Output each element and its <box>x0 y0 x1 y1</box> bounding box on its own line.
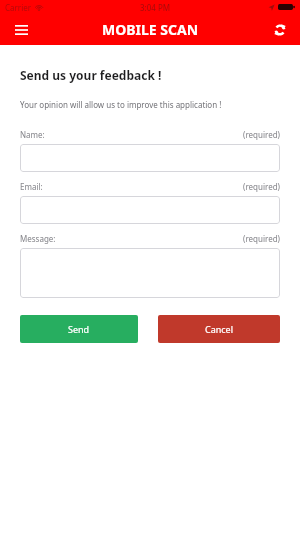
button[interactable]: Open navigation menu <box>0 14 42 45</box>
button[interactable]: Text input field <box>20 248 280 298</box>
button[interactable]: Text input field <box>20 144 280 172</box>
staticText: Name: <box>20 129 45 140</box>
staticText: Send <box>68 323 90 335</box>
button[interactable]: Cancel <box>158 315 280 343</box>
staticText: (required) <box>243 181 280 192</box>
button[interactable]: Refresh <box>260 14 300 45</box>
staticText: Cancel <box>205 323 234 335</box>
staticText: Send us your feedback ! <box>20 67 162 83</box>
staticText: Your opinion will allow us to improve th… <box>20 99 222 110</box>
staticText: Message: <box>20 233 56 244</box>
button[interactable]: Send <box>20 315 138 343</box>
staticText: 3:04 PM <box>140 2 171 13</box>
staticText: (required) <box>243 233 280 244</box>
button[interactable]: Text input field <box>20 196 280 224</box>
staticText: MOBILE SCAN <box>102 20 199 39</box>
staticText: Email: <box>20 181 43 192</box>
staticText: Carrier <box>5 2 32 13</box>
staticText: (required) <box>243 129 280 140</box>
